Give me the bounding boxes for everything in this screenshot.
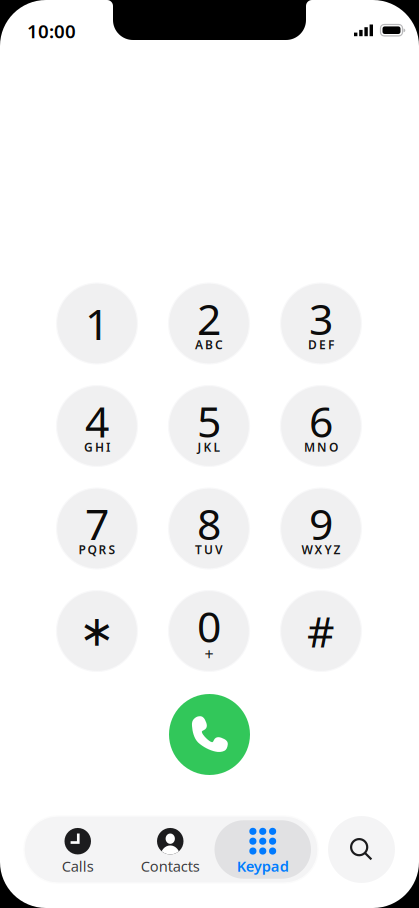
button[interactable]: 4 bbox=[56, 385, 137, 466]
button[interactable]: 9 bbox=[280, 488, 361, 569]
button[interactable]: 5 bbox=[168, 385, 249, 466]
staticText: ∗ bbox=[79, 607, 115, 655]
button[interactable]: 2 bbox=[168, 283, 249, 364]
staticText: 8 bbox=[197, 495, 221, 552]
staticText: J K L bbox=[197, 439, 220, 455]
staticText: Keypad bbox=[237, 856, 289, 876]
button[interactable]: 3 bbox=[280, 283, 361, 364]
button[interactable]: Contacts bbox=[124, 816, 216, 883]
staticText: 4 bbox=[85, 393, 109, 449]
staticText: # bbox=[307, 603, 335, 659]
staticText: A B C bbox=[195, 336, 223, 352]
button[interactable]: Call bbox=[169, 694, 250, 775]
staticText: M N O bbox=[304, 439, 338, 455]
staticText: 5 bbox=[197, 393, 221, 449]
staticText: P Q R S bbox=[78, 541, 115, 557]
staticText: 6 bbox=[309, 393, 333, 449]
staticText: T U V bbox=[195, 541, 223, 557]
button[interactable]: 8 bbox=[168, 488, 249, 569]
staticText: Calls bbox=[62, 856, 94, 876]
staticText: 3 bbox=[309, 290, 333, 347]
button[interactable]: # bbox=[280, 590, 361, 671]
staticText: D E F bbox=[308, 336, 334, 352]
staticText: 9 bbox=[309, 495, 333, 552]
button[interactable]: Calls bbox=[31, 816, 124, 883]
staticText: 0 bbox=[197, 598, 221, 654]
button[interactable]: 6 bbox=[280, 385, 361, 466]
staticText: W X Y Z bbox=[301, 541, 340, 557]
button[interactable]: 1 bbox=[56, 283, 137, 364]
staticText: 2 bbox=[197, 290, 221, 347]
staticText: 7 bbox=[85, 495, 109, 552]
button[interactable]: Search bbox=[328, 816, 395, 883]
staticText: 1 bbox=[85, 295, 109, 352]
button[interactable]: 7 bbox=[56, 488, 137, 569]
staticText: + bbox=[204, 643, 213, 665]
button[interactable]: ∗ bbox=[56, 590, 137, 671]
button[interactable]: Keypad bbox=[216, 816, 309, 883]
button[interactable]: 0 bbox=[168, 590, 249, 671]
staticText: 10:00 bbox=[27, 18, 76, 43]
staticText: G H I bbox=[84, 439, 110, 455]
staticText: Contacts bbox=[141, 856, 200, 876]
